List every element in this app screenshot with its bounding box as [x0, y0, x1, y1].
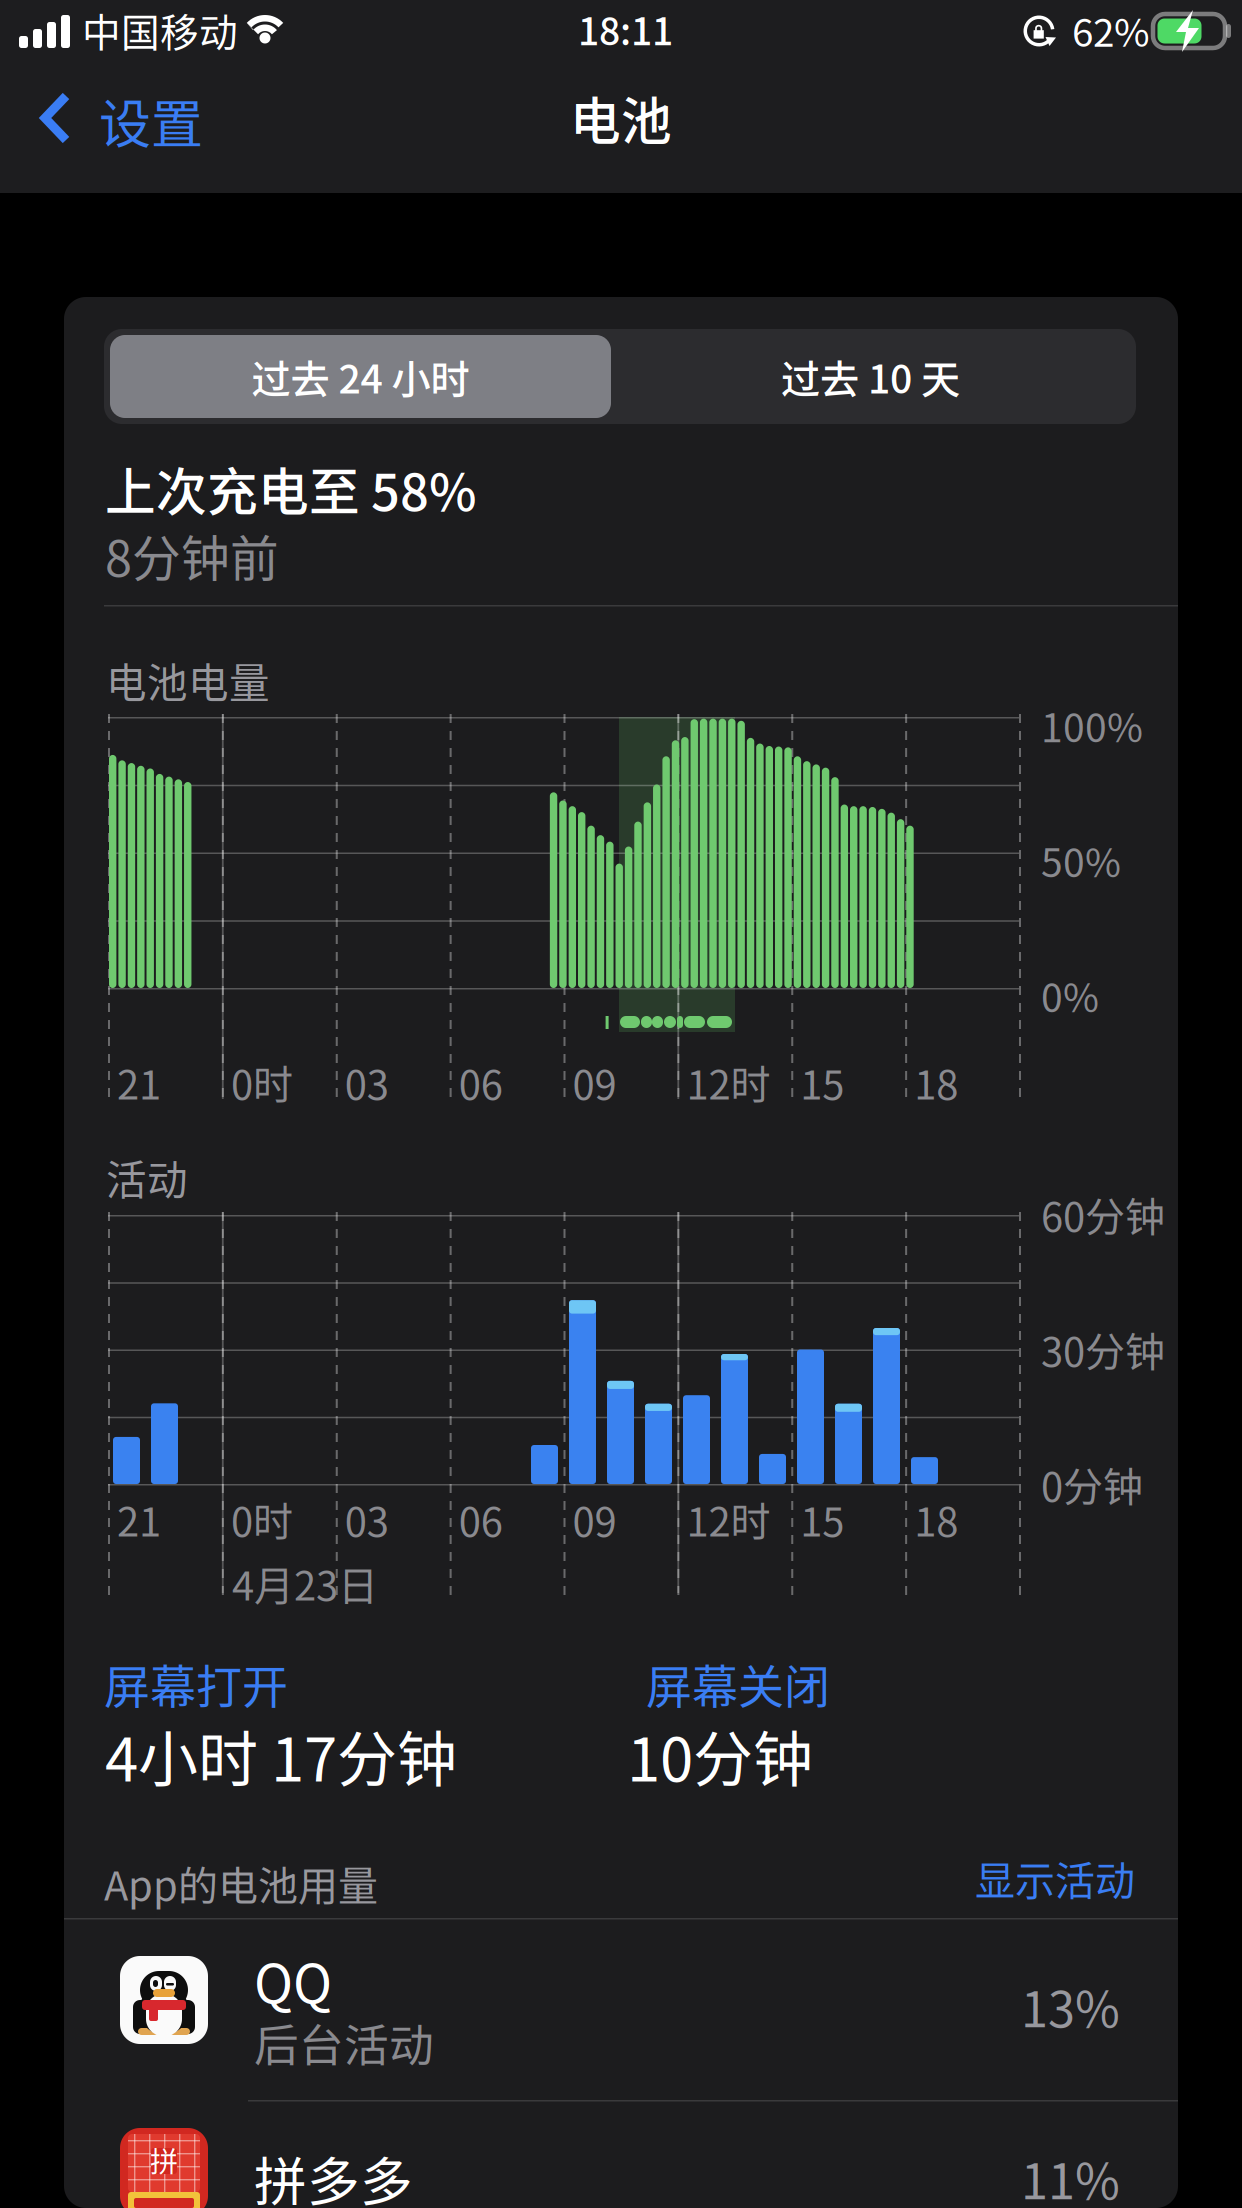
- button[interactable]: 拼: [64, 2092, 1178, 2208]
- staticText: 12时: [686, 1490, 770, 1548]
- button[interactable]: 设置: [0, 66, 230, 176]
- staticText: 21: [117, 1490, 161, 1548]
- staticText: 上次充电至 58%: [105, 452, 477, 525]
- staticText: 10分钟: [627, 1712, 813, 1799]
- staticText: 03: [345, 1053, 389, 1111]
- button[interactable]: 过去 10 天: [611, 335, 1130, 418]
- staticText: 0分钟: [1041, 1455, 1143, 1513]
- staticText: 100%: [1041, 697, 1143, 754]
- staticText: 06: [459, 1053, 503, 1111]
- staticText: 0时: [231, 1490, 293, 1548]
- staticText: 拼: [150, 2140, 178, 2180]
- staticText: 过去 24 小时: [251, 348, 469, 405]
- staticText: 03: [345, 1490, 389, 1548]
- staticText: 0%: [1041, 967, 1099, 1024]
- staticText: App的电池用量: [104, 1854, 378, 1912]
- staticText: QQ: [254, 1942, 332, 2018]
- staticText: 8分钟前: [105, 520, 279, 590]
- button[interactable]: 过去 24 小时: [110, 335, 611, 418]
- button[interactable]: 显示活动: [915, 1848, 1135, 1908]
- staticText: 15: [800, 1490, 844, 1548]
- staticText: 0时: [231, 1053, 293, 1111]
- staticText: 中国移动: [82, 2, 238, 58]
- staticText: 09: [572, 1053, 616, 1111]
- staticText: 电池: [570, 81, 672, 155]
- staticText: 过去 10 天: [781, 348, 960, 405]
- staticText: 13%: [1021, 1971, 1120, 2041]
- staticText: 50%: [1041, 832, 1121, 889]
- button[interactable]: QQ: [64, 1920, 1178, 2090]
- staticText: 09: [572, 1490, 616, 1548]
- staticText: 06: [459, 1490, 503, 1548]
- staticText: 电池电量: [106, 651, 270, 710]
- staticText: 21: [117, 1053, 161, 1111]
- staticText: 62%: [1072, 2, 1150, 58]
- staticText: 11%: [1021, 2143, 1120, 2208]
- staticText: 15: [800, 1053, 844, 1111]
- staticText: 屏幕关闭: [646, 1650, 830, 1717]
- staticText: 设置: [99, 83, 203, 158]
- staticText: 拼多多: [254, 2140, 413, 2208]
- staticText: 活动: [106, 1148, 188, 1207]
- staticText: 显示活动: [975, 1849, 1135, 1907]
- staticText: 18: [914, 1490, 958, 1548]
- staticText: 4小时 17分钟: [105, 1712, 457, 1799]
- staticText: 18: [914, 1053, 958, 1111]
- staticText: 30分钟: [1041, 1320, 1165, 1378]
- staticText: 60分钟: [1041, 1185, 1165, 1243]
- staticText: 18:11: [578, 2, 673, 56]
- staticText: 12时: [686, 1053, 770, 1111]
- staticText: 后台活动: [254, 2010, 434, 2075]
- staticText: 4月23日: [232, 1554, 378, 1612]
- staticText: 屏幕打开: [104, 1650, 288, 1717]
